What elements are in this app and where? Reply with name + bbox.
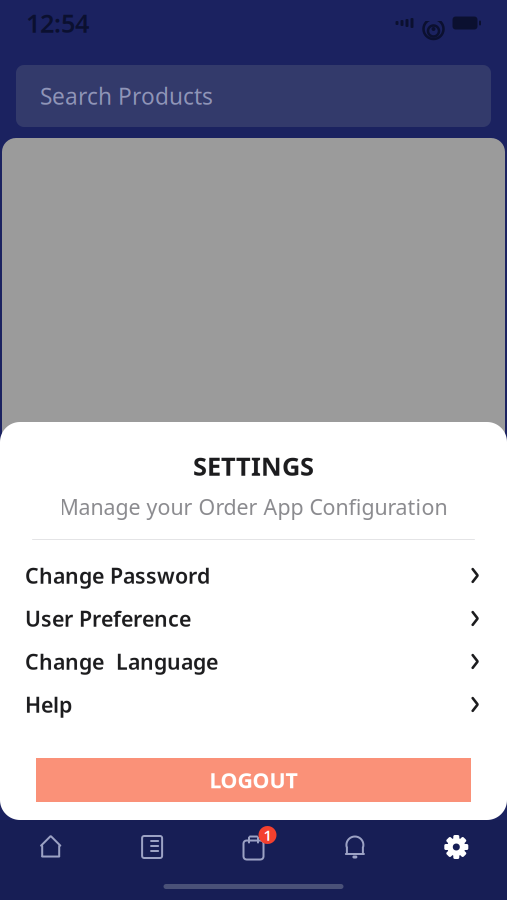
button[interactable]: Settings — [406, 820, 507, 874]
staticText: Change Password — [25, 561, 210, 590]
button[interactable]: LOGOUT — [36, 758, 471, 802]
staticText: Help — [25, 690, 72, 719]
staticText: User Preference — [25, 604, 191, 633]
button[interactable]: User Preference — [0, 597, 507, 640]
staticText: Manage your Order App Configuration — [59, 493, 447, 521]
button[interactable]: Change Password — [0, 554, 507, 597]
button[interactable]: Cart — [203, 820, 304, 874]
button[interactable]: Home — [0, 820, 101, 874]
button[interactable]: Notifications — [304, 820, 406, 874]
staticText: 1 — [263, 825, 271, 845]
staticText: LOGOUT — [209, 766, 297, 794]
button[interactable]: Help — [0, 683, 507, 726]
staticText: 12:54 — [26, 6, 89, 40]
staticText: Search Products — [40, 81, 213, 111]
staticText: SETTINGS — [193, 449, 314, 483]
button[interactable]: Change Language — [0, 640, 507, 683]
button[interactable]: Orders — [101, 820, 203, 874]
staticText: Change Language — [25, 647, 218, 676]
